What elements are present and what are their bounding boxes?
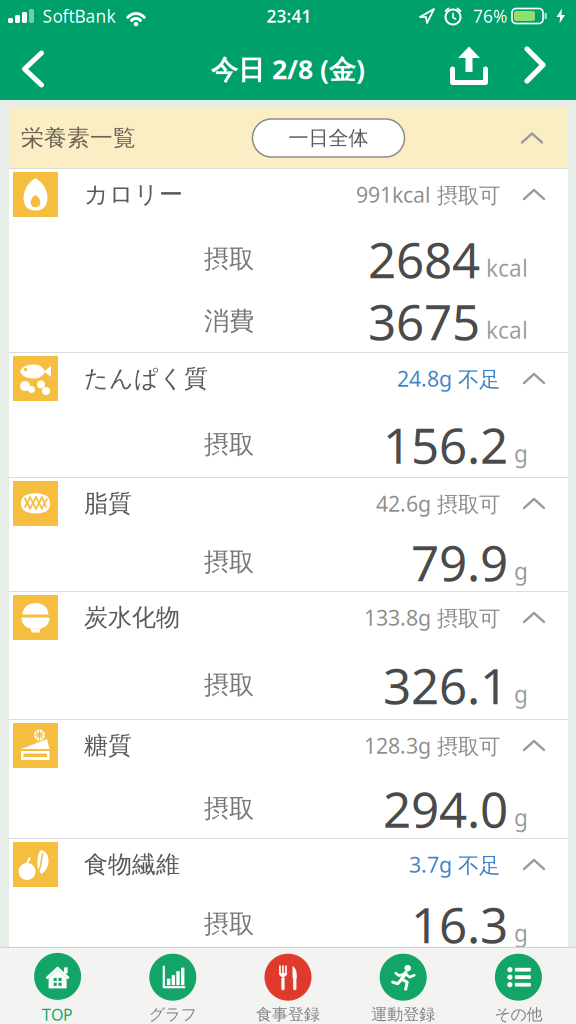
staticText: 79.9 xyxy=(411,529,508,595)
staticText: 糖質 xyxy=(84,731,132,760)
button[interactable] xyxy=(450,45,488,85)
button[interactable]: 食物繊維 xyxy=(9,839,568,890)
staticText: その他 xyxy=(494,1005,542,1024)
button[interactable]: カロリー xyxy=(9,169,568,220)
staticText: g xyxy=(514,438,528,468)
staticText: 2684 xyxy=(368,226,480,292)
staticText: 294.0 xyxy=(383,776,508,841)
staticText: 摂取 xyxy=(204,908,254,939)
staticText: g xyxy=(514,679,528,709)
button[interactable]: 脂質 xyxy=(9,478,568,529)
staticText: kcal xyxy=(486,253,528,283)
button[interactable]: 一日全体 xyxy=(252,119,404,157)
staticText: 3675 xyxy=(368,288,480,354)
staticText: 991kcal 摂取可 xyxy=(356,180,500,209)
staticText: 摂取 xyxy=(204,546,254,577)
staticText: 3.7g 不足 xyxy=(409,850,500,879)
staticText: TOP xyxy=(42,1004,73,1024)
button[interactable]: たんぱく質 xyxy=(9,353,568,404)
staticText: g xyxy=(514,802,528,832)
staticText: 16.3 xyxy=(411,891,508,957)
button[interactable]: 運動登録 xyxy=(346,954,461,1024)
staticText: 156.2 xyxy=(383,412,508,477)
staticText: 23:41 xyxy=(266,4,311,27)
button[interactable] xyxy=(524,46,546,84)
staticText: カロリー xyxy=(84,180,183,209)
staticText: 一日全体 xyxy=(288,126,368,150)
staticText: 栄養素一覧 xyxy=(21,124,136,152)
button[interactable]: グラフ xyxy=(115,954,230,1024)
staticText: 消費 xyxy=(204,305,254,336)
staticText: SoftBank xyxy=(42,4,115,27)
staticText: 摂取 xyxy=(204,429,254,460)
staticText: たんぱく質 xyxy=(84,364,208,393)
staticText: 脂質 xyxy=(84,489,132,518)
staticText: 摂取 xyxy=(204,243,254,274)
button[interactable]: 糖質 xyxy=(9,720,568,771)
button[interactable]: 食事登録 xyxy=(230,954,346,1024)
staticText: 炭水化物 xyxy=(84,603,180,632)
staticText: 326.1 xyxy=(383,652,508,718)
staticText: 42.6g 摂取可 xyxy=(376,489,500,518)
button[interactable] xyxy=(521,132,543,144)
staticText: 運動登録 xyxy=(371,1005,435,1024)
staticText: 摂取 xyxy=(204,793,254,824)
staticText: g xyxy=(514,918,528,948)
staticText: グラフ xyxy=(149,1005,197,1024)
button[interactable]: TOP xyxy=(0,953,115,1024)
staticText: 24.8g 不足 xyxy=(397,364,500,393)
button[interactable]: その他 xyxy=(461,954,576,1024)
staticText: g xyxy=(514,556,528,586)
staticText: 今日 2/8 (金) xyxy=(211,51,365,87)
staticText: 摂取 xyxy=(204,669,254,700)
button[interactable]: 炭水化物 xyxy=(9,592,568,643)
button[interactable] xyxy=(20,50,45,88)
staticText: kcal xyxy=(486,315,528,345)
staticText: 食事登録 xyxy=(256,1005,320,1024)
staticText: 133.8g 摂取可 xyxy=(364,603,500,632)
staticText: 76% xyxy=(473,4,507,27)
staticText: 128.3g 摂取可 xyxy=(364,731,500,760)
staticText: 食物繊維 xyxy=(84,850,180,879)
